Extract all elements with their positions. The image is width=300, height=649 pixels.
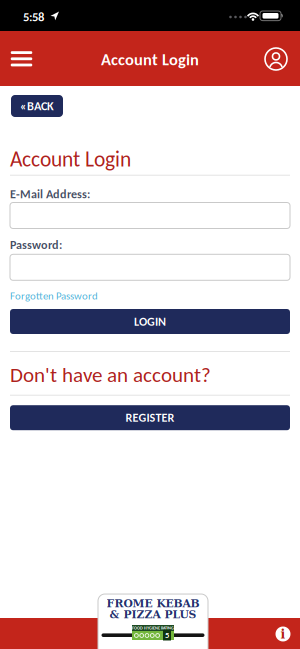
staticText: Password: <box>10 237 62 252</box>
staticText: E-Mail Address: <box>10 187 90 201</box>
staticText: Account Login <box>101 49 199 70</box>
staticText: LOGIN <box>134 314 166 329</box>
staticText: Don't have an account? <box>10 362 211 388</box>
staticText: REGISTER <box>125 410 174 425</box>
staticText: FOOD HYGIENE RATING <box>132 625 174 631</box>
staticText: & PIZZA PLUS <box>109 608 196 621</box>
staticText: Account Login <box>10 146 131 172</box>
staticText: Forgotten Password <box>10 289 98 302</box>
staticText: 5:58 <box>23 9 44 25</box>
staticText: «BACK <box>20 98 54 113</box>
staticText: 5 <box>165 630 169 640</box>
staticText: FROME KEBAB <box>106 597 199 610</box>
staticText: i <box>280 627 285 641</box>
